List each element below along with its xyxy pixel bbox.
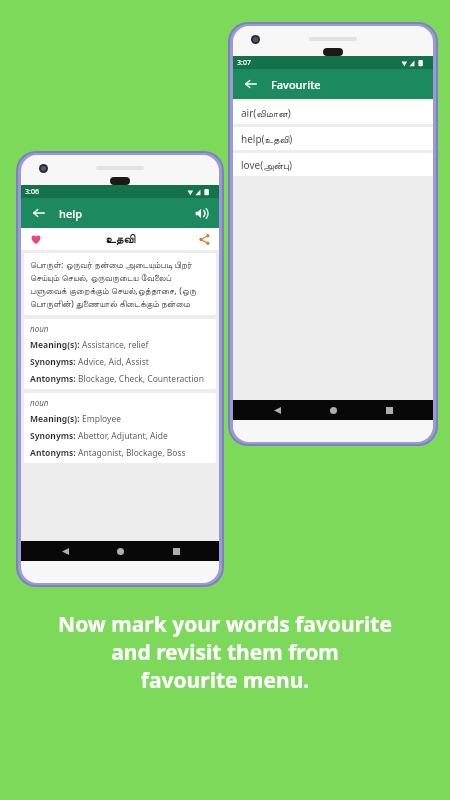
button[interactable]: noun xyxy=(24,319,216,389)
staticText: help(உதவி) xyxy=(241,132,293,146)
button[interactable]: Back xyxy=(29,203,49,223)
staticText: Antagonist, Blockage, Boss xyxy=(78,447,186,459)
staticText: உதவி xyxy=(45,233,195,245)
staticText: Synonyms: xyxy=(30,430,78,442)
button[interactable]: help(உதவி) xyxy=(233,127,433,150)
button[interactable]: பொருள்: ஒருவர் நன்மை அடையும்படி பிறர் செ… xyxy=(24,253,216,315)
staticText: noun xyxy=(30,397,49,408)
staticText: Antonyms: xyxy=(30,447,78,459)
button[interactable]: noun xyxy=(24,393,216,463)
staticText: 3:06 xyxy=(25,187,39,197)
button[interactable]: Recents xyxy=(164,541,188,561)
button[interactable]: Back xyxy=(241,74,261,94)
staticText: Antonyms: xyxy=(30,373,78,385)
button[interactable]: love(அன்பு) xyxy=(233,153,433,176)
staticText: noun xyxy=(30,323,49,334)
button[interactable]: Recents xyxy=(377,400,401,420)
staticText: Assistance, relief xyxy=(82,339,149,351)
button[interactable]: Back xyxy=(53,541,77,561)
staticText: Meaning(s): xyxy=(30,339,82,351)
staticText: Advice, Aid, Assist xyxy=(78,356,149,368)
staticText: Meaning(s): xyxy=(30,413,82,425)
button[interactable]: Home xyxy=(321,400,345,420)
staticText: Now mark your words favourite and revisi… xyxy=(0,610,450,694)
staticText: Employee xyxy=(82,413,121,425)
staticText: help xyxy=(59,206,83,221)
staticText: Synonyms: xyxy=(30,356,78,368)
staticText: பொருள்: ஒருவர் நன்மை அடையும்படி பிறர் செ… xyxy=(30,258,210,310)
staticText: Blockage, Check, Counteraction xyxy=(78,373,205,385)
staticText: Abettor, Adjutant, Aide xyxy=(78,430,168,442)
button[interactable]: air(விமான) xyxy=(233,101,433,124)
staticText: love(அன்பு) xyxy=(241,158,292,172)
staticText: 3:07 xyxy=(237,58,251,68)
button[interactable]: Favourite xyxy=(27,230,45,248)
button[interactable]: Home xyxy=(108,541,132,561)
button[interactable]: Back xyxy=(265,400,289,420)
staticText: Favourite xyxy=(271,77,321,92)
staticText: air(விமான) xyxy=(241,106,291,120)
button[interactable]: Share xyxy=(195,230,213,248)
button[interactable]: Speak xyxy=(191,203,211,223)
